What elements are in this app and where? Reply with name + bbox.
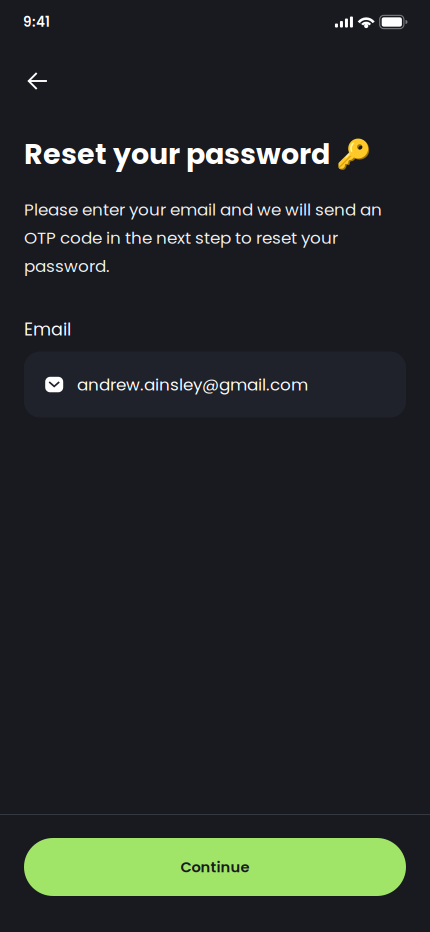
- staticText: Reset your password 🔑: [24, 134, 372, 174]
- button[interactable]: Back: [24, 57, 64, 99]
- staticText: Continue: [180, 857, 249, 877]
- button[interactable]: Continue: [24, 838, 406, 896]
- staticText: andrew.ainsley@gmail.com: [77, 373, 308, 396]
- staticText: Please enter your email and we will send…: [24, 198, 382, 278]
- staticText: Email: [24, 317, 71, 341]
- staticText: 9:41: [23, 12, 50, 31]
- button[interactable]: andrew.ainsley@gmail.com: [24, 351, 406, 417]
